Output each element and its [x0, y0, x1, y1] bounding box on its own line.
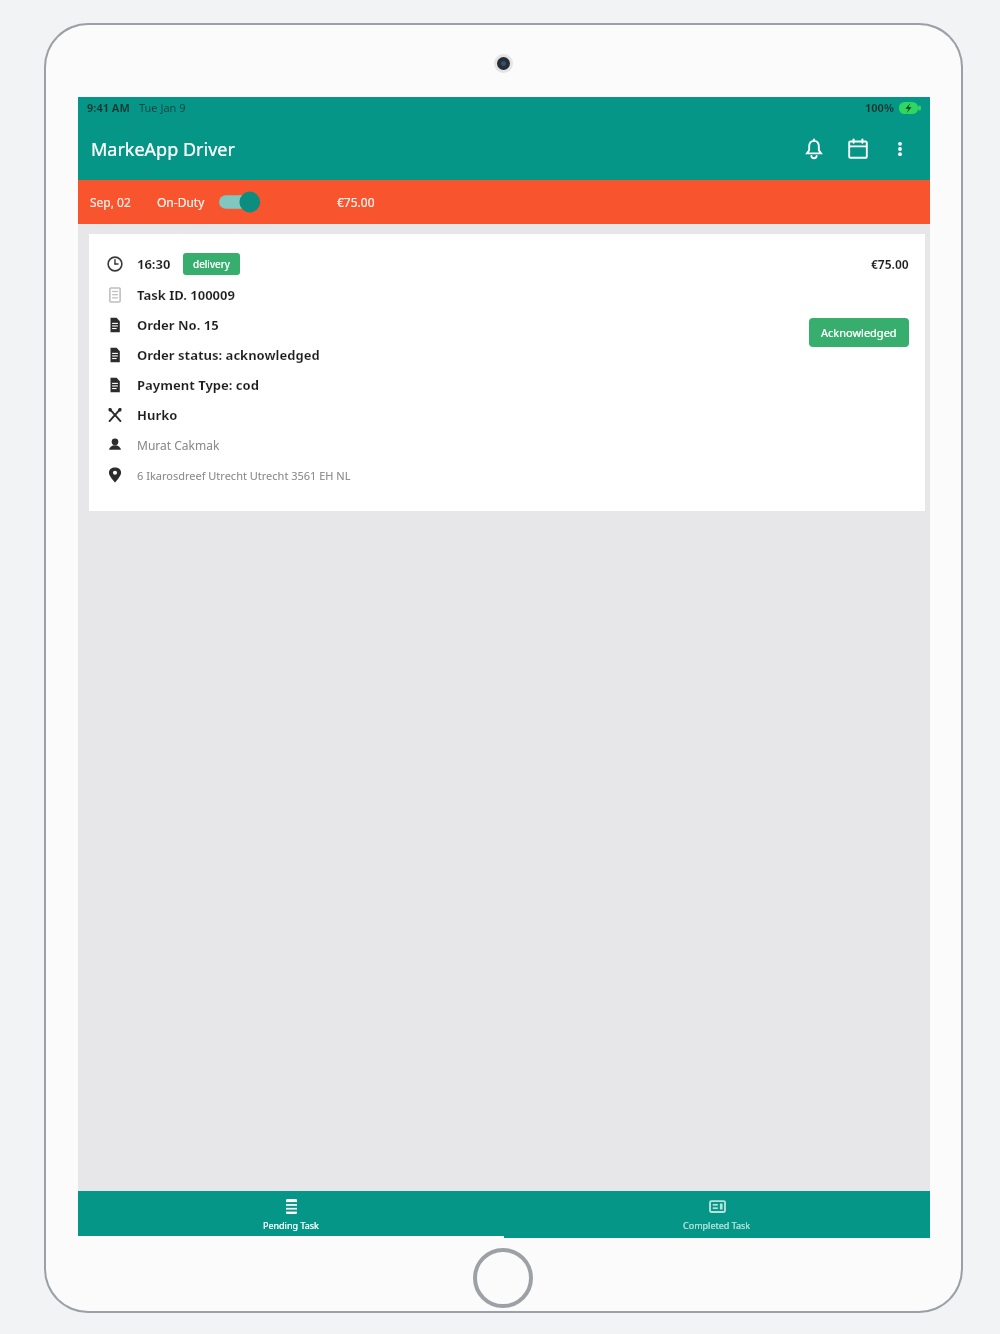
staticText: 100% [865, 100, 894, 115]
staticText: Pending Task [263, 1219, 319, 1231]
button[interactable]: 16:30 [89, 234, 925, 511]
staticText: delivery [193, 257, 230, 271]
staticText: Task ID. 100009 [137, 286, 235, 304]
staticText: 16:30 [137, 255, 171, 273]
staticText: Order status: acknowledged [137, 346, 320, 364]
staticText: MarkeApp Driver [91, 137, 235, 162]
staticText: On-Duty [157, 194, 205, 210]
button[interactable]: Completed Task [504, 1191, 930, 1238]
staticText: Murat Cakmak [137, 437, 220, 453]
staticText: €75.00 [871, 256, 909, 272]
button[interactable]: On duty toggle [219, 189, 263, 215]
staticText: 9:41 AM [87, 100, 130, 115]
button[interactable]: Notifications [792, 127, 836, 171]
button[interactable]: Pending Task [78, 1191, 504, 1238]
staticText: Payment Type: cod [137, 376, 259, 394]
button[interactable]: More options [880, 129, 920, 169]
staticText: Completed Task [683, 1219, 751, 1231]
staticText: Tue Jan 9 [139, 100, 186, 115]
staticText: Order No. 15 [137, 316, 219, 334]
staticText: Hurko [137, 406, 178, 424]
staticText: Acknowledged [821, 325, 897, 340]
staticText: Sep, 02 [90, 194, 131, 210]
button[interactable]: Calendar [836, 127, 880, 171]
button[interactable]: Acknowledged [809, 318, 909, 347]
staticText: 6 Ikarosdreef Utrecht Utrecht 3561 EH NL [137, 468, 351, 483]
staticText: €75.00 [337, 194, 375, 210]
button[interactable]: delivery [183, 253, 240, 275]
